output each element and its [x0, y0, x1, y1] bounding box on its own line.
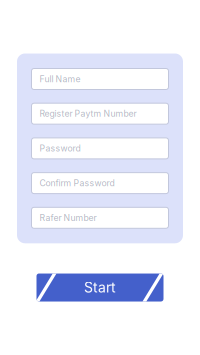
- staticText: Full Name: [39, 74, 80, 84]
- button[interactable]: Start: [36, 273, 163, 301]
- button[interactable]: Confirm Password: [31, 173, 168, 194]
- staticText: Start: [84, 279, 116, 296]
- button[interactable]: Password: [31, 138, 168, 159]
- button[interactable]: Full Name: [31, 68, 168, 89]
- button[interactable]: Register Paytm Number: [31, 103, 168, 124]
- staticText: Rafer Number: [39, 213, 96, 223]
- button[interactable]: Rafer Number: [31, 207, 168, 228]
- staticText: Register Paytm Number: [39, 108, 136, 119]
- staticText: Password: [39, 143, 80, 154]
- staticText: Confirm Password: [39, 178, 114, 188]
